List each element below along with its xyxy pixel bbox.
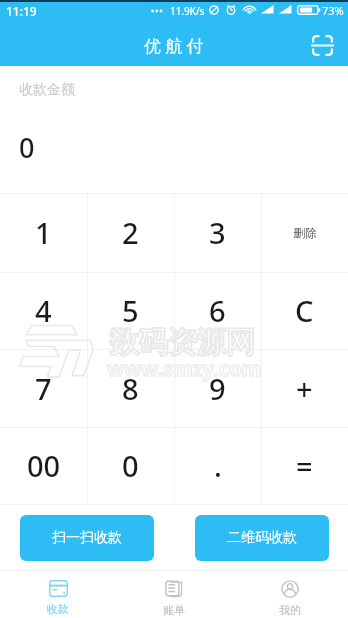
- staticText: www.smzy.com: [107, 355, 262, 382]
- staticText: 0: [122, 446, 139, 485]
- staticText: 扫一扫收款: [52, 529, 122, 547]
- staticText: 8: [122, 369, 139, 408]
- button[interactable]: 0: [87, 427, 174, 504]
- staticText: 我的: [279, 603, 301, 617]
- button[interactable]: 删除: [261, 193, 348, 272]
- button[interactable]: .: [174, 427, 261, 504]
- staticText: 数码资源网: [110, 324, 255, 361]
- staticText: .: [214, 446, 222, 485]
- staticText: =: [296, 446, 313, 485]
- staticText: C: [295, 291, 314, 330]
- button[interactable]: +: [261, 349, 348, 427]
- button[interactable]: 7: [0, 349, 87, 427]
- button[interactable]: 00: [0, 427, 87, 504]
- staticText: 账单: [163, 603, 185, 617]
- staticText: 删除: [293, 225, 317, 240]
- button[interactable]: 扫一扫收款: [20, 515, 154, 561]
- button[interactable]: =: [261, 427, 348, 504]
- staticText: 7: [35, 369, 52, 408]
- button[interactable]: Scan QR code: [306, 29, 338, 61]
- button[interactable]: 二维码收款: [195, 515, 329, 561]
- staticText: 0: [19, 129, 35, 166]
- staticText: 5: [122, 291, 139, 330]
- staticText: 二维码收款: [227, 529, 297, 547]
- staticText: 4: [35, 291, 52, 330]
- button[interactable]: 5: [87, 272, 174, 349]
- button[interactable]: C: [261, 272, 348, 349]
- button[interactable]: 4: [0, 272, 87, 349]
- staticText: 73%: [322, 3, 344, 18]
- button[interactable]: 收款: [0, 571, 116, 618]
- staticText: 优 航 付: [144, 34, 204, 57]
- button[interactable]: 账单: [116, 571, 232, 618]
- staticText: +: [296, 369, 313, 408]
- button[interactable]: 9: [174, 349, 261, 427]
- staticText: 00: [27, 446, 61, 485]
- staticText: 11:19: [6, 3, 37, 19]
- staticText: 6: [209, 291, 226, 330]
- staticText: 2: [122, 213, 139, 252]
- staticText: 9: [209, 369, 226, 408]
- staticText: 11.9K/s: [170, 4, 205, 18]
- button[interactable]: 3: [174, 193, 261, 272]
- button[interactable]: 1: [0, 193, 87, 272]
- button[interactable]: 6: [174, 272, 261, 349]
- staticText: 3: [209, 213, 226, 252]
- button[interactable]: 我的: [232, 571, 348, 618]
- staticText: 1: [35, 213, 52, 252]
- button[interactable]: 8: [87, 349, 174, 427]
- staticText: 收款: [47, 602, 69, 616]
- button[interactable]: 2: [87, 193, 174, 272]
- staticText: 收款金额: [19, 81, 75, 99]
